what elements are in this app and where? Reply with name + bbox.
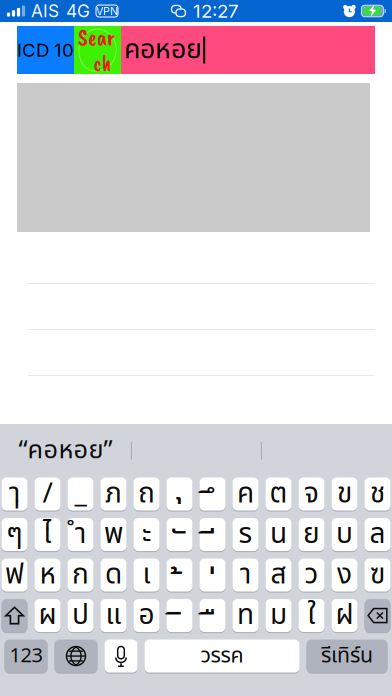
button[interactable]: า (232, 558, 258, 592)
button[interactable]: ิ (166, 598, 192, 633)
button[interactable]: ั (166, 517, 192, 552)
staticText: อ (138, 594, 154, 637)
staticText: ำ (75, 513, 86, 556)
button[interactable]: ภ (100, 477, 126, 511)
button[interactable]: วรรค (144, 639, 299, 673)
button[interactable]: เ (133, 558, 159, 592)
staticText: ช (370, 473, 385, 515)
button[interactable]: ท (232, 598, 258, 633)
staticText: ไ (43, 513, 52, 556)
button[interactable]: ล (364, 517, 390, 552)
staticText: ว (304, 554, 318, 596)
button[interactable]: ก (67, 558, 93, 592)
button[interactable]: พ (100, 517, 126, 552)
staticText: ใ (307, 594, 315, 637)
staticText: ย (303, 513, 320, 556)
staticText: ๅ (9, 473, 20, 515)
button[interactable]: ข (331, 477, 357, 511)
button[interactable]: ICD 10 (17, 26, 74, 74)
button[interactable]: ี (199, 517, 225, 552)
staticText: “คอหอย” (18, 431, 112, 470)
button[interactable]: ต (265, 477, 291, 511)
button[interactable]: ฝ (331, 598, 357, 633)
staticText: ุ (175, 457, 184, 511)
staticText: พ (104, 513, 123, 556)
staticText: ิ (175, 599, 184, 654)
staticText: ค (237, 473, 254, 515)
button[interactable]: ๅ (1, 477, 27, 511)
button[interactable]: ึ (199, 477, 225, 511)
button[interactable]: ด (100, 558, 126, 592)
button[interactable]: ้ (166, 558, 192, 592)
button[interactable]: แ (100, 598, 126, 633)
button[interactable]: ห (34, 558, 60, 592)
button[interactable]: รีเทิร์น (306, 639, 387, 673)
staticText: ป (72, 594, 89, 637)
button[interactable]: Delete (364, 598, 390, 633)
button[interactable]: ๆ (1, 517, 27, 552)
button[interactable]: ว (298, 558, 324, 592)
button[interactable]: ค (232, 477, 258, 511)
button[interactable]: 123 (4, 639, 47, 673)
staticText: ท (237, 594, 254, 637)
button[interactable]: ช (364, 477, 390, 511)
button[interactable]: ฟ (1, 558, 27, 592)
staticText: แ (105, 594, 121, 637)
button[interactable]: “คอหอย” (0, 429, 131, 471)
button[interactable]: ุ (166, 477, 192, 511)
button[interactable]: ม (265, 598, 291, 633)
staticText: ก (72, 554, 89, 596)
staticText: VPN (96, 4, 118, 17)
staticText: ฟ (5, 554, 24, 596)
button[interactable]: ถ (133, 477, 159, 511)
staticText: า (240, 554, 251, 596)
staticText: ฝ (335, 594, 353, 637)
staticText: ต (269, 473, 287, 515)
button[interactable]: Dictate (104, 639, 137, 673)
button[interactable]: ผ (34, 598, 60, 633)
staticText: ผ (38, 594, 56, 637)
staticText: ch (93, 48, 111, 77)
button[interactable]: ใ (298, 598, 324, 633)
staticText: 4G (66, 0, 90, 21)
staticText: ภ (105, 473, 122, 515)
button[interactable]: ง (331, 558, 357, 592)
staticText: AIS (31, 0, 59, 21)
staticText: ้ (175, 559, 184, 613)
button[interactable]: จ (298, 477, 324, 511)
button[interactable]: บ (331, 517, 357, 552)
staticText: 12:27 (193, 0, 239, 22)
button[interactable]: ่ (199, 558, 225, 592)
staticText: ข (337, 473, 352, 515)
staticText: ICD 10 (17, 39, 74, 61)
button[interactable]: / (34, 477, 60, 511)
button[interactable]: น (265, 517, 291, 552)
staticText: ส (270, 554, 286, 596)
button[interactable]: ำ (67, 517, 93, 552)
staticText: ึ (208, 478, 217, 532)
button[interactable]: ฃ (364, 558, 390, 592)
staticText: เ (142, 554, 150, 596)
button[interactable]: Next keyboard (54, 639, 97, 673)
button[interactable]: ไ (34, 517, 60, 552)
button[interactable]: ร (232, 517, 258, 552)
staticText: ด (105, 554, 122, 596)
staticText: บ (336, 513, 353, 556)
staticText: คอหอย (124, 30, 202, 70)
staticText: ถ (138, 473, 155, 515)
staticText: ล (369, 513, 385, 556)
staticText: ฃ (370, 554, 385, 596)
staticText: ร (238, 513, 252, 556)
button[interactable]: ส (265, 558, 291, 592)
button[interactable]: Search (74, 26, 121, 74)
staticText: น (270, 513, 287, 556)
button[interactable]: ป (67, 598, 93, 633)
staticText: / (42, 473, 52, 515)
button[interactable]: Shift (1, 598, 27, 633)
button[interactable]: ื (199, 598, 225, 633)
staticText: ่ (208, 559, 217, 613)
button[interactable]: ย (298, 517, 324, 552)
button[interactable]: ะ (133, 517, 159, 552)
button[interactable]: _ (67, 477, 93, 511)
button[interactable]: อ (133, 598, 159, 633)
